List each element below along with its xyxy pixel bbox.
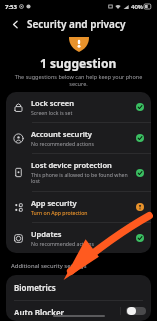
button[interactable]: Auto Blocker (6, 301, 151, 321)
staticText: No recommended actions (31, 140, 94, 147)
staticText: App security (31, 198, 77, 208)
staticText: Lock screen (31, 98, 74, 108)
button[interactable]: Biometrics (6, 275, 151, 300)
button[interactable]: Updates (6, 223, 151, 253)
staticText: 1 suggestion (40, 55, 117, 71)
button[interactable]: Account security (6, 123, 151, 153)
staticText: 7:53 (5, 3, 17, 11)
button[interactable]: Lock screen (6, 92, 151, 122)
staticText: 40% (131, 3, 143, 11)
staticText: This phone is allowed to be found when l… (31, 171, 132, 185)
button[interactable]: Back (7, 16, 23, 32)
staticText: Turn on App protection (31, 209, 88, 216)
staticText: Auto Blocker (14, 307, 65, 315)
staticText: Updates (31, 229, 62, 239)
staticText: Screen lock is set (31, 109, 73, 116)
staticText: The suggestions below can help keep your… (14, 73, 143, 87)
staticText: Lost device protection (31, 160, 112, 170)
staticText: Biometrics (14, 282, 56, 293)
staticText: Security and privacy (27, 17, 126, 31)
staticText: No recommended actions (31, 240, 94, 247)
staticText: Additional security settings (11, 262, 87, 270)
staticText: Account security (31, 129, 92, 139)
button[interactable]: App security (6, 192, 151, 222)
button[interactable]: Lost device protection (6, 154, 151, 191)
button[interactable]: Auto Blocker toggle (126, 307, 146, 315)
